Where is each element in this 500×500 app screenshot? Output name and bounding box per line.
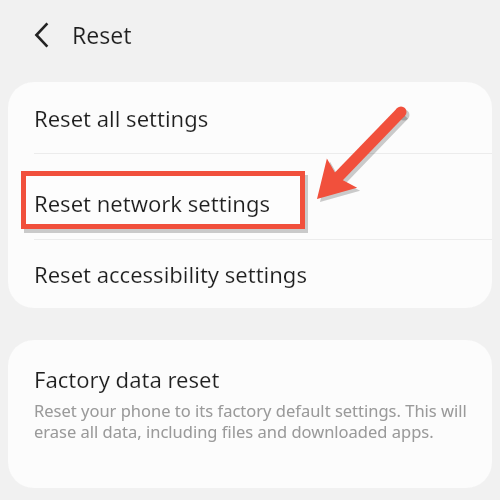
staticText: Reset accessibility settings [34, 259, 307, 289]
staticText: Factory data reset [34, 364, 220, 394]
staticText: Reset network settings [34, 188, 270, 218]
button[interactable]: Back [18, 11, 66, 59]
button[interactable]: Factory data reset [8, 340, 492, 488]
staticText: Reset your phone to its factory default … [34, 399, 470, 443]
staticText: Reset all settings [34, 103, 209, 133]
staticText: Reset network settings [34, 182, 270, 212]
staticText: Reset [72, 19, 132, 50]
button[interactable]: Reset accessibility settings [8, 240, 492, 308]
button[interactable]: Reset all settings [8, 82, 492, 153]
button[interactable]: Reset network settings [8, 154, 492, 239]
